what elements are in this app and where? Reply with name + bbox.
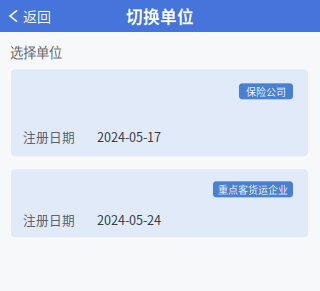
button[interactable]: 保险公司 [11, 69, 308, 156]
button[interactable]: 返回 [0, 0, 59, 32]
staticText: 选择单位 [10, 42, 62, 61]
staticText: 2024-05-17 [97, 127, 161, 146]
staticText: 切换单位 [126, 4, 194, 28]
staticText: 注册日期 [23, 210, 75, 229]
staticText: 返回 [23, 6, 51, 26]
button[interactable]: 重点客货运企业 [11, 169, 308, 237]
staticText: 重点客货运企业 [218, 182, 288, 197]
staticText: 2024-05-24 [97, 210, 161, 229]
staticText: 保险公司 [246, 84, 286, 99]
staticText: 注册日期 [23, 127, 75, 146]
